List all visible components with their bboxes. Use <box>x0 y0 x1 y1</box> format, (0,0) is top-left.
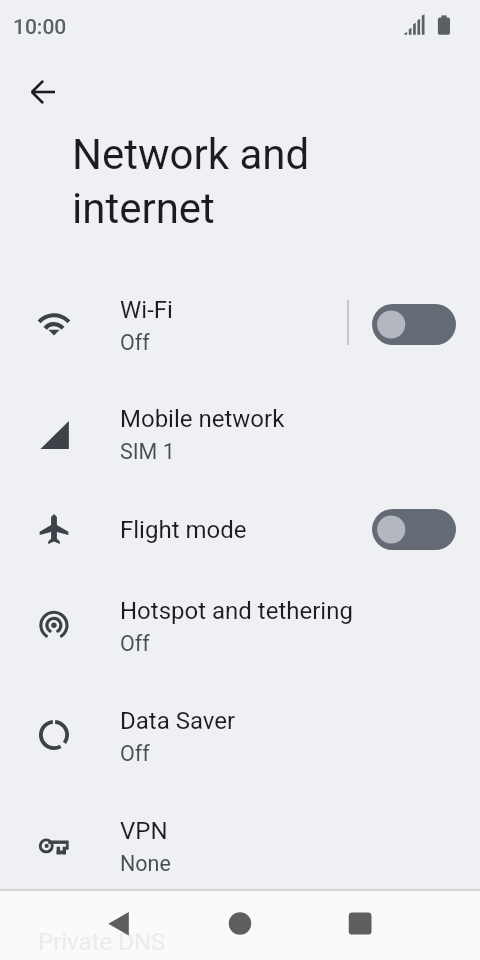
button[interactable] <box>0 387 480 497</box>
button[interactable]: Back <box>82 889 154 960</box>
button[interactable] <box>0 498 480 579</box>
staticText: Off <box>120 330 150 355</box>
staticText: Private DNS <box>38 928 166 956</box>
staticText: Flight mode <box>120 516 247 544</box>
button[interactable] <box>0 278 480 388</box>
staticText: Data Saver <box>120 707 236 735</box>
button[interactable]: Home <box>204 889 276 960</box>
staticText: SIM 1 <box>120 439 175 464</box>
staticText: Off <box>120 741 150 766</box>
staticText: 10:00 <box>13 15 67 40</box>
button[interactable]: Flight mode toggle <box>360 498 468 560</box>
button[interactable]: Wi-Fi toggle <box>360 293 468 355</box>
button[interactable] <box>0 689 480 799</box>
button[interactable]: Back <box>15 64 71 120</box>
staticText: Network and internet <box>72 130 332 233</box>
button[interactable]: Recent apps <box>324 889 396 960</box>
staticText: VPN <box>120 817 168 845</box>
staticText: Wi-Fi <box>120 296 173 324</box>
staticText: Hotspot and tethering <box>120 597 353 625</box>
button[interactable] <box>0 579 480 689</box>
staticText: Off <box>120 631 150 656</box>
staticText: Mobile network <box>120 405 285 433</box>
staticText: None <box>120 851 171 876</box>
button[interactable] <box>0 799 480 909</box>
